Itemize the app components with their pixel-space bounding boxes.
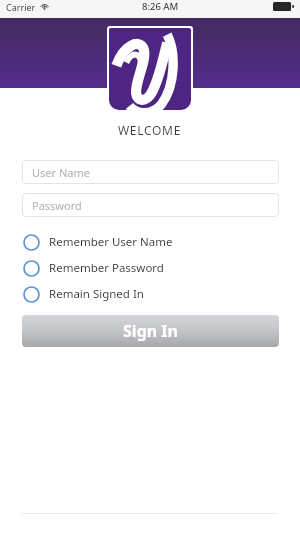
button[interactable]: Remember User Name	[22, 229, 279, 255]
staticText: 8:26 AM	[142, 0, 179, 13]
button[interactable]: Password	[22, 193, 279, 217]
staticText: Carrier	[6, 1, 36, 13]
staticText: WELCOME	[118, 122, 182, 138]
button[interactable]: Remain Signed In	[22, 281, 279, 307]
button[interactable]: User Name	[22, 160, 279, 184]
staticText: Remember Password	[49, 260, 164, 276]
button[interactable]: Remember Password	[22, 255, 279, 281]
staticText: Remain Signed In	[49, 286, 144, 302]
staticText: Sign In	[123, 320, 178, 342]
button[interactable]: Sign In	[22, 315, 279, 347]
staticText: Password	[32, 198, 82, 213]
staticText: User Name	[32, 165, 90, 180]
other: Logo	[109, 28, 191, 110]
staticText: Remember User Name	[49, 234, 173, 250]
